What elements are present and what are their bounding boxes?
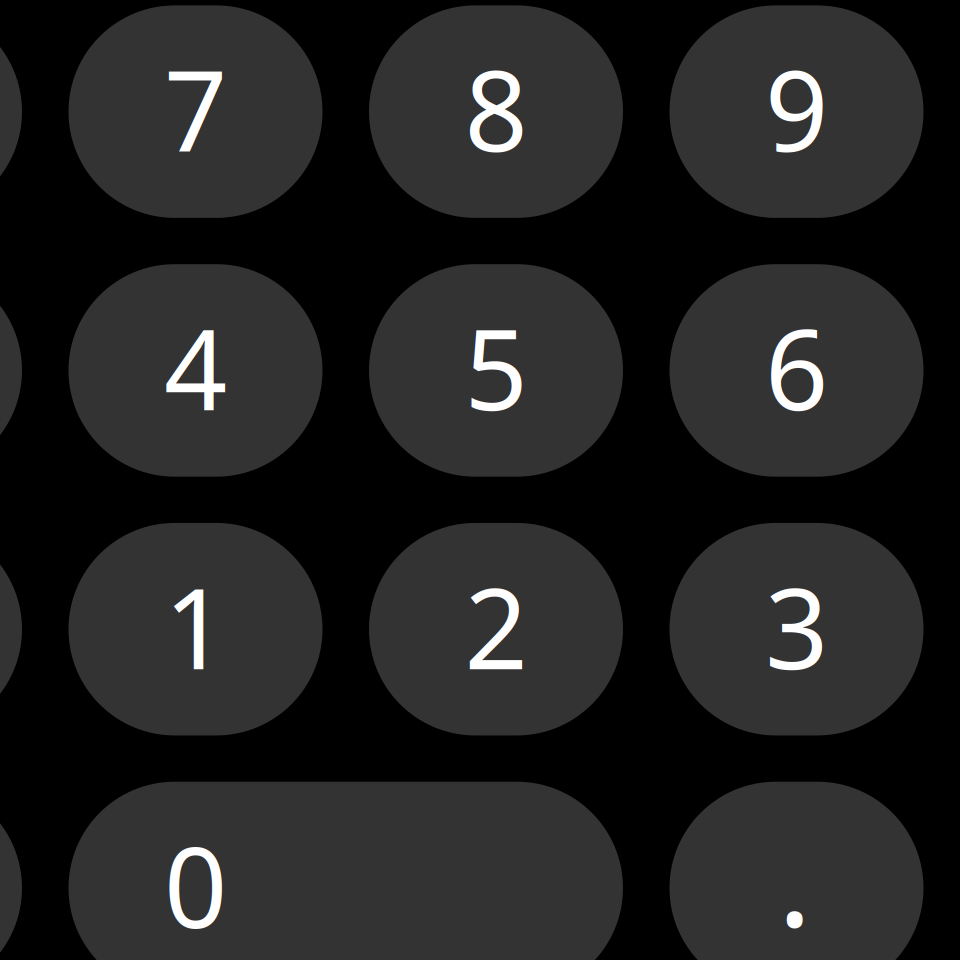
staticText: 5	[464, 294, 527, 441]
button[interactable]: 5	[369, 264, 623, 477]
button[interactable]: 4	[68, 264, 322, 477]
button[interactable]: Key	[0, 264, 22, 477]
staticText: 9	[765, 35, 828, 182]
button[interactable]: 6	[669, 264, 923, 477]
staticText: .	[777, 792, 811, 960]
button[interactable]: Key	[0, 523, 22, 735]
button[interactable]: 8	[369, 5, 623, 218]
staticText: 3	[765, 553, 828, 700]
button[interactable]: 1	[68, 523, 322, 735]
button[interactable]: 2	[369, 523, 623, 735]
button[interactable]: 7	[68, 5, 322, 218]
staticText: 1	[164, 553, 227, 700]
staticText: 2	[464, 553, 527, 700]
staticText: 8	[464, 35, 527, 182]
staticText: 7	[164, 35, 227, 182]
staticText: 6	[765, 294, 828, 441]
staticText: 0	[164, 811, 227, 958]
staticText: 4	[164, 294, 227, 441]
button[interactable]: 3	[669, 523, 923, 735]
button[interactable]: 0	[68, 782, 623, 960]
button[interactable]: Key	[0, 782, 22, 960]
button[interactable]: .	[669, 782, 923, 960]
button[interactable]: Key	[0, 5, 22, 218]
button[interactable]: 9	[669, 5, 923, 218]
